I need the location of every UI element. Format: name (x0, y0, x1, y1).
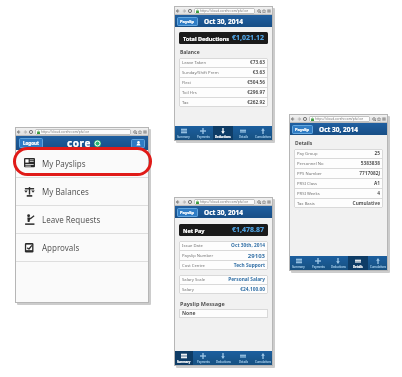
staticText: Salary Scale (182, 277, 228, 283)
button[interactable]: Cumulatives (253, 351, 273, 366)
button[interactable]: Salary (179, 285, 268, 294)
staticText: Payslip (180, 210, 195, 215)
staticText: Cumulative (352, 200, 380, 207)
button[interactable]: Sunday/Shift Prem (179, 68, 268, 78)
button[interactable]: Cumulatives (253, 126, 273, 141)
staticText: Salary (182, 287, 240, 293)
button[interactable]: Cumulatives (368, 256, 388, 271)
staticText: €504.56 (247, 79, 265, 86)
staticText: Tax (182, 100, 247, 106)
staticText: €1,021.12 (232, 33, 264, 43)
staticText: 4 (377, 190, 380, 197)
staticText: https://cloud.corehr.com/plv/cor (41, 130, 90, 134)
button[interactable]: Payments (308, 256, 328, 271)
button[interactable]: Salary Scale (179, 275, 268, 285)
button[interactable]: Tax Basis (294, 199, 383, 208)
staticText: 25 (374, 150, 380, 157)
button[interactable]: My Payslips (15, 150, 149, 178)
staticText: Details (239, 360, 248, 364)
button[interactable]: Tax (179, 98, 268, 107)
staticText: Oct 30th, 2014 (231, 242, 265, 249)
button[interactable]: Summary (174, 126, 193, 141)
button[interactable]: Payslip (177, 208, 198, 217)
staticText: Payslip Message (180, 300, 225, 307)
staticText: Deductions (215, 135, 231, 139)
staticText: €262.92 (247, 99, 265, 106)
staticText: Payments (197, 360, 210, 364)
staticText: Payslip Number (182, 253, 247, 259)
staticText: core (67, 136, 92, 150)
staticText: Balance (180, 49, 200, 56)
button[interactable]: PRSI Weeks (294, 189, 383, 199)
staticText: A1 (373, 180, 380, 187)
staticText: https://cloud.corehr.com/plv/cor (200, 9, 249, 13)
staticText: Details (295, 140, 313, 147)
staticText: Summary (177, 360, 191, 364)
button[interactable]: Personnel No (294, 159, 383, 169)
staticText: Summary (177, 135, 190, 139)
button[interactable]: Cost Centre (179, 261, 268, 270)
button[interactable]: Deductions (328, 256, 348, 271)
button[interactable]: Details (233, 126, 253, 141)
staticText: Pay Group (297, 151, 374, 157)
staticText: 29103 (247, 252, 265, 260)
staticText: Issue Date (182, 243, 231, 249)
staticText: Payslip (295, 127, 310, 132)
staticText: Leave Taken (182, 60, 249, 66)
staticText: My Payslips (42, 158, 86, 169)
button[interactable]: PRSI Class (294, 179, 383, 189)
staticText: PPS Number (297, 171, 359, 177)
staticText: €1,478.87 (232, 225, 264, 235)
button[interactable]: My Balances (15, 178, 149, 206)
button[interactable]: Deductions (213, 126, 233, 141)
button[interactable]: PPS Number (294, 169, 383, 179)
staticText: 5383838 (360, 160, 380, 167)
staticText: Personnel No (297, 161, 360, 167)
staticText: €24,100.00 (240, 286, 265, 293)
staticText: 7717082J (359, 170, 380, 177)
staticText: Sunday/Shift Prem (182, 70, 252, 76)
staticText: Payments (197, 135, 210, 139)
button[interactable]: Deductions (213, 351, 233, 366)
button[interactable]: Logout (19, 138, 43, 148)
staticText: My Balances (42, 186, 89, 197)
button[interactable]: Payments (193, 126, 213, 141)
button[interactable]: Summary (174, 351, 193, 366)
staticText: €296.97 (247, 89, 265, 96)
staticText: €73.63 (249, 59, 265, 66)
staticText: Payments (312, 265, 325, 269)
staticText: Oct 30, 2014 (204, 208, 243, 217)
button[interactable]: Payslip Number (179, 251, 268, 261)
button[interactable]: Pay Group (294, 149, 383, 159)
staticText: https://cloud.corehr.com/plv/cor (200, 200, 249, 204)
staticText: Net Pay (183, 227, 205, 234)
button[interactable]: Approvals (15, 234, 149, 262)
button[interactable]: Summary (289, 256, 308, 271)
button[interactable]: Leave Taken (179, 58, 268, 68)
staticText: Tax Basis (297, 201, 352, 207)
button[interactable]: Payslip (292, 125, 313, 134)
button[interactable]: Account (131, 139, 145, 148)
button[interactable]: Toil Hrs (179, 88, 268, 98)
button[interactable]: Details (348, 256, 368, 271)
staticText: Oct 30, 2014 (319, 125, 358, 134)
staticText: Details (353, 265, 363, 269)
button[interactable]: Details (233, 351, 253, 366)
staticText: Cumulatives (255, 135, 272, 139)
staticText: Deductions (331, 265, 346, 269)
staticText: Deductions (216, 360, 231, 364)
button[interactable]: Issue Date (179, 241, 268, 251)
staticText: Approvals (42, 242, 80, 253)
staticText: Cumulatives (370, 265, 387, 269)
button[interactable]: Flexi (179, 78, 268, 88)
staticText: Toil Hrs (182, 90, 247, 96)
staticText: €3.63 (252, 69, 265, 76)
staticText: Cost Centre (182, 263, 233, 269)
button[interactable]: Payments (193, 351, 213, 366)
button[interactable]: Leave Requests (15, 206, 149, 234)
button[interactable]: Payslip (177, 17, 198, 26)
staticText: Oct 30, 2014 (204, 17, 243, 26)
staticText: https://cloud.corehr.com/plv/cor (315, 117, 364, 121)
staticText: Payslip (180, 19, 195, 24)
staticText: None (182, 310, 196, 317)
